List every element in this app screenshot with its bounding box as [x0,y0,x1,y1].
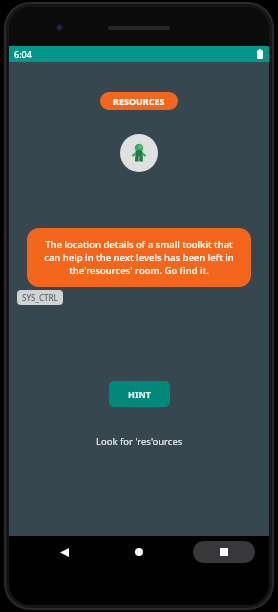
button[interactable]: Avatar [120,134,158,172]
button[interactable]: HINT [109,381,170,407]
button[interactable]: Back [51,539,77,565]
staticText: HINT [128,388,151,400]
staticText: The location details of a small toolkit … [37,238,241,277]
staticText: 6:04 [14,48,32,60]
button[interactable]: RESOURCES [100,92,178,110]
button[interactable]: The location details of a small toolkit … [27,228,251,287]
staticText: SYS_CTRL [22,292,58,303]
button[interactable]: Home [126,539,152,565]
staticText: Look for 'res'ources [96,435,183,448]
button[interactable]: Recents [193,541,255,563]
staticText: RESOURCES [113,95,165,107]
button[interactable]: SYS_CTRL [17,290,63,305]
